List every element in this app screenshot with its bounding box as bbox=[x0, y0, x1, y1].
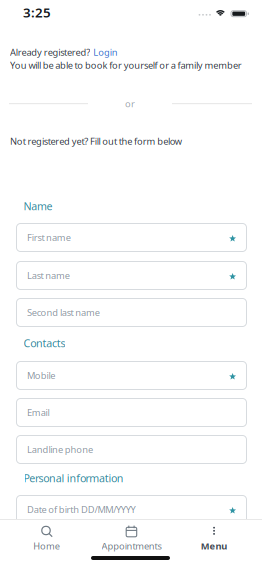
button[interactable]: Date of birth DD/MM/YYYY bbox=[16, 495, 247, 524]
staticText: First name bbox=[27, 231, 71, 244]
staticText: Appointments bbox=[102, 540, 161, 552]
staticText: Menu bbox=[201, 540, 227, 552]
staticText: Contacts bbox=[23, 336, 65, 350]
staticText: Already registered? bbox=[10, 46, 90, 58]
button[interactable]: Landline phone bbox=[16, 435, 247, 464]
staticText: Not registered yet? Fill out the form be… bbox=[10, 135, 182, 147]
staticText: Name bbox=[23, 199, 53, 213]
staticText: Personal information bbox=[23, 471, 124, 485]
staticText: Landline phone bbox=[27, 443, 93, 456]
staticText: Login bbox=[93, 46, 118, 58]
button[interactable]: Last name bbox=[16, 261, 247, 290]
staticText: Home bbox=[33, 540, 60, 552]
staticText: Last name bbox=[27, 269, 70, 282]
button[interactable]: Home bbox=[3, 520, 90, 560]
staticText: Email bbox=[27, 406, 49, 419]
staticText: You will be able to book for yourself or… bbox=[10, 59, 242, 71]
staticText: 3:25 bbox=[23, 3, 51, 21]
button[interactable]: Appointments bbox=[88, 520, 175, 560]
button[interactable]: Second last name bbox=[16, 298, 247, 327]
button[interactable]: Email bbox=[16, 398, 247, 427]
staticText: Mobile bbox=[27, 369, 55, 382]
button[interactable]: Mobile bbox=[16, 361, 247, 390]
staticText: Second last name bbox=[27, 306, 100, 319]
button[interactable]: Menu bbox=[170, 520, 257, 560]
staticText: or bbox=[125, 97, 135, 110]
staticText: Date of birth DD/MM/YYYY bbox=[27, 503, 135, 516]
button[interactable]: First name bbox=[16, 223, 247, 252]
button[interactable]: Login bbox=[93, 46, 118, 58]
